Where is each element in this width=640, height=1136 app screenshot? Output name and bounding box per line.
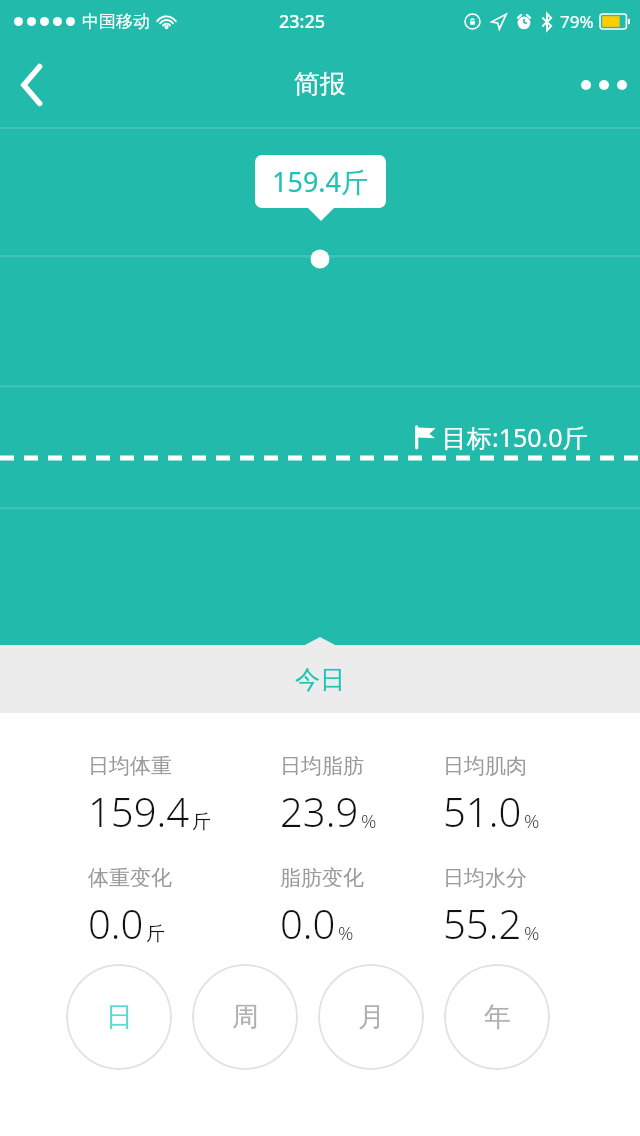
staticText: % bbox=[338, 920, 354, 946]
staticText: 周 bbox=[232, 1000, 259, 1034]
button[interactable]: 年 bbox=[444, 964, 550, 1070]
staticText: 斤 bbox=[192, 810, 211, 834]
staticText: % bbox=[524, 808, 540, 834]
button[interactable]: Back bbox=[0, 53, 64, 117]
staticText: 简报 bbox=[294, 68, 346, 101]
staticText: 目标:150.0斤 bbox=[442, 420, 588, 454]
staticText: % bbox=[524, 920, 540, 946]
staticText: 今日 bbox=[295, 664, 345, 695]
staticText: 脂肪变化 bbox=[280, 865, 364, 891]
staticText: 日均脂肪 bbox=[280, 753, 364, 779]
staticText: 159.4 bbox=[88, 784, 190, 838]
staticText: 0.0 bbox=[280, 896, 336, 950]
staticText: 斤 bbox=[146, 922, 165, 946]
staticText: 159.4斤 bbox=[272, 163, 369, 200]
staticText: 日均水分 bbox=[443, 865, 527, 891]
staticText: 23:25 bbox=[279, 9, 326, 34]
staticText: 体重变化 bbox=[88, 865, 172, 891]
staticText: 51.0 bbox=[443, 784, 522, 838]
button[interactable]: 今日 bbox=[0, 645, 640, 713]
staticText: 日 bbox=[106, 1000, 133, 1034]
staticText: 79% bbox=[560, 10, 594, 33]
staticText: 中国移动 bbox=[82, 11, 150, 32]
button[interactable]: 日 bbox=[66, 964, 172, 1070]
staticText: % bbox=[361, 808, 377, 834]
button[interactable]: 月 bbox=[318, 964, 424, 1070]
staticText: 年 bbox=[484, 1000, 511, 1034]
button[interactable]: 周 bbox=[192, 964, 298, 1070]
staticText: 日均肌肉 bbox=[443, 753, 527, 779]
staticText: 23.9 bbox=[280, 784, 359, 838]
staticText: 0.0 bbox=[88, 896, 144, 950]
staticText: 日均体重 bbox=[88, 753, 172, 779]
staticText: 55.2 bbox=[443, 896, 522, 950]
staticText: 月 bbox=[358, 1000, 385, 1034]
button[interactable]: More options bbox=[568, 49, 640, 121]
